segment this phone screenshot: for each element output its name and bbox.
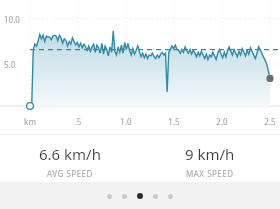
button[interactable]: Page 1 xyxy=(107,194,112,199)
staticText: AVG SPEED xyxy=(47,168,93,179)
staticText: 5.0 xyxy=(4,59,16,70)
button[interactable]: 10.0 xyxy=(0,0,280,134)
staticText: 9 km/h xyxy=(185,144,235,164)
staticText: 1.0 xyxy=(112,116,140,127)
button[interactable]: Page 5 xyxy=(168,194,173,199)
staticText: .5 xyxy=(64,116,92,127)
button[interactable]: Page 4 xyxy=(153,194,158,199)
button[interactable]: 9 km/h xyxy=(140,135,280,182)
staticText: 6.6 km/h xyxy=(39,144,101,164)
button[interactable]: Page 2 xyxy=(122,194,127,199)
staticText: 1.5 xyxy=(160,116,188,127)
staticText: 2.0 xyxy=(208,116,236,127)
button[interactable]: Page 3 xyxy=(137,193,143,199)
button[interactable]: 6.6 km/h xyxy=(0,135,140,182)
staticText: MAX SPEED xyxy=(186,168,234,179)
staticText: km xyxy=(16,116,44,127)
staticText: 2.5 xyxy=(256,116,280,127)
staticText: 10.0 xyxy=(4,14,20,25)
